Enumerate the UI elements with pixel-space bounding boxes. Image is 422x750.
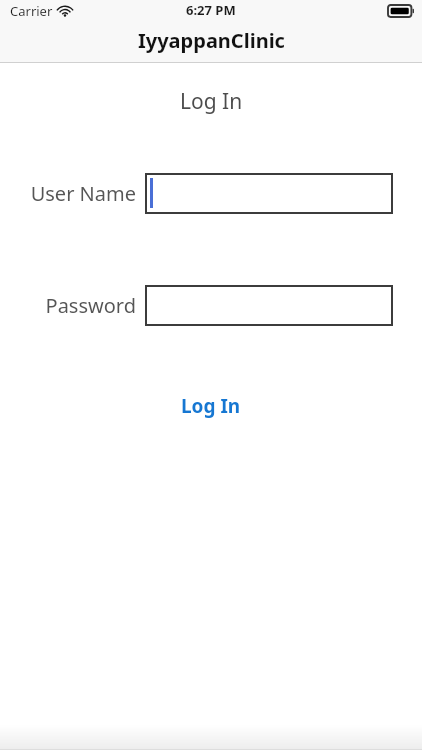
staticText: Log In [181,393,241,419]
staticText: Carrier [10,2,53,20]
staticText: User Name [30,180,136,207]
staticText: 6:27 PM [186,1,236,19]
button[interactable] [145,285,393,326]
button[interactable] [145,173,393,214]
staticText: Log In [180,87,243,116]
staticText: Password [45,292,136,319]
button[interactable]: Log In [163,387,259,425]
staticText: IyyappanClinic [138,27,285,54]
